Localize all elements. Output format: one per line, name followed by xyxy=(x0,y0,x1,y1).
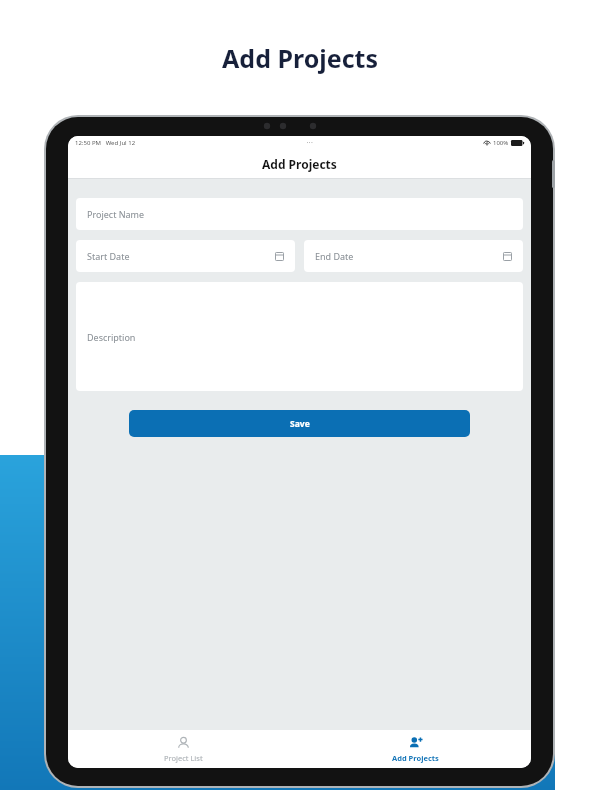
button[interactable]: Project List xyxy=(68,730,299,768)
staticText: Add Projects xyxy=(222,41,378,75)
button[interactable]: Add Projects xyxy=(299,730,531,768)
staticText: ⋯ xyxy=(306,139,313,147)
button[interactable]: Project Name xyxy=(76,198,523,230)
staticText: Project List xyxy=(164,753,203,763)
button[interactable]: Start Date xyxy=(76,240,295,272)
staticText: Project Name xyxy=(87,208,145,220)
staticText: Save xyxy=(290,418,310,430)
button[interactable]: End Date xyxy=(304,240,523,272)
staticText: Description xyxy=(87,331,136,343)
button[interactable]: Description xyxy=(76,282,523,391)
staticText: 100% xyxy=(493,139,509,147)
staticText: 12:50 PM Wed Jul 12 xyxy=(75,139,136,147)
staticText: End Date xyxy=(315,250,354,262)
staticText: Start Date xyxy=(87,250,130,262)
staticText: Add Projects xyxy=(392,753,439,763)
staticText: Add Projects xyxy=(262,156,337,172)
button[interactable]: Save xyxy=(129,410,470,437)
